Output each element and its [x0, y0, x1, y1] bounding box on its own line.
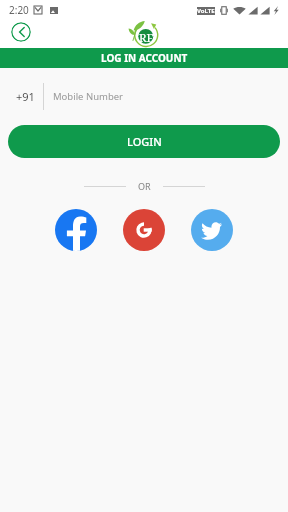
button[interactable]: Back [11, 22, 31, 42]
staticText: LOGIN [127, 134, 162, 149]
staticText: LOG IN ACCOUNT [101, 51, 188, 65]
button[interactable]: LOGIN [8, 125, 280, 158]
button[interactable]: Sign in with Google [123, 209, 165, 251]
button[interactable]: Sign in with Twitter [191, 209, 233, 251]
button[interactable]: Sign in with Facebook [55, 209, 97, 251]
staticText: VoLTE [197, 7, 215, 15]
staticText: OR [138, 180, 151, 192]
staticText: +91 [16, 89, 35, 104]
staticText: Mobile Number [53, 90, 124, 103]
staticText: RF [139, 30, 154, 43]
staticText: 2:20 [9, 3, 29, 17]
